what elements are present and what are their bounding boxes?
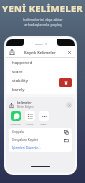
staticText: Notlar [26,122,34,125]
button[interactable]: scare [6,67,75,76]
button[interactable]: Diğer [38,111,49,125]
button[interactable]: WhatsApp [10,111,21,125]
staticText: stability [12,78,28,84]
staticText: Kopyala [12,130,24,134]
button[interactable]: Dosyalara Kaydet [9,136,72,144]
button[interactable]: Sil [59,78,72,87]
button[interactable]: barely [6,85,75,94]
staticText: scare [12,69,23,75]
staticText: kelimeler [17,101,32,105]
button[interactable]: happened [6,58,75,67]
staticText: happened [12,60,33,66]
button[interactable]: Notlar [24,111,35,125]
button[interactable]: stability [6,76,75,85]
staticText: arkadaşlarınla paylaş [24,22,62,27]
button[interactable]: Dışa aktar [9,49,15,55]
staticText: kelimelerini dışa aktar [23,17,63,22]
button[interactable]: Kapat [66,102,72,108]
staticText: Dosyalara Kaydet [12,138,38,142]
button[interactable]: Kapat [67,50,72,55]
staticText: WhatsApp [10,122,21,125]
staticText: Kayıtlı Kelimeler [24,50,56,55]
button[interactable]: Kopyala [9,128,72,136]
button[interactable]: İşlemleri Düzenle... [9,144,72,152]
staticText: Metin Belgesi [17,105,34,109]
staticText: Diğer [40,122,47,125]
staticText: İşlemleri Düzenle... [12,146,41,150]
staticText: YENİ KELİMELER [2,2,83,15]
staticText: barely [12,87,25,93]
